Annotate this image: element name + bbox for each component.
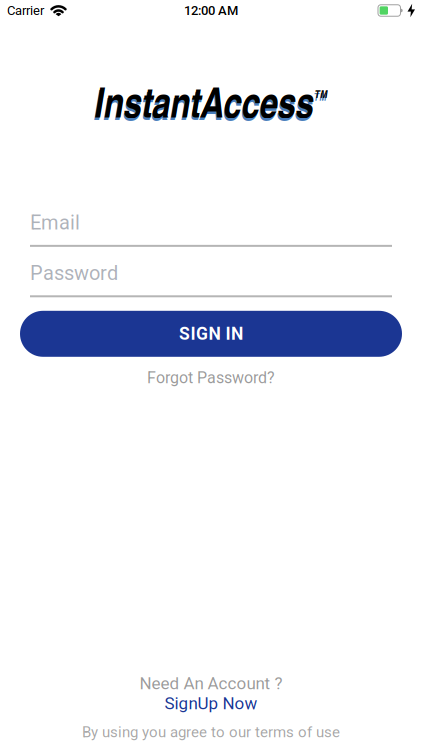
staticText: SignUp Now [164,693,257,713]
staticText: InstantAccess [87,73,318,132]
staticText: SIGN IN [179,323,243,344]
staticText: Carrier [7,3,44,18]
button[interactable]: Forgot Password? [147,368,275,387]
staticText: Password [30,261,118,285]
button[interactable]: Password text field [0,261,422,297]
staticText: InstantAccess [88,71,319,130]
staticText: 12:00 AM [184,3,238,18]
button[interactable]: SignUp Now [164,693,257,713]
staticText: Need An Account ? [139,674,282,693]
staticText: By using you agree to our terms of use [82,723,340,741]
staticText: TM [319,88,333,104]
button[interactable]: Email text field [0,211,422,247]
button[interactable]: SIGN IN [0,311,422,357]
staticText: TM [320,86,334,101]
staticText: Forgot Password? [147,368,275,387]
staticText: Email [30,211,80,234]
